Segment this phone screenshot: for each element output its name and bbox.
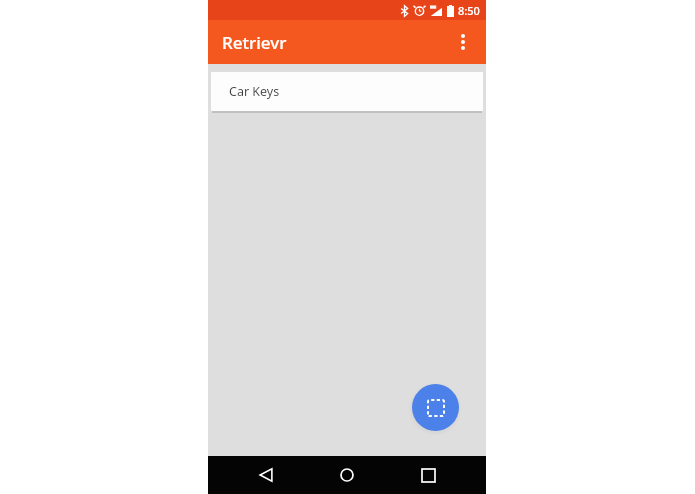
staticText: Car Keys — [229, 83, 280, 100]
button[interactable]: Car Keys — [211, 72, 483, 111]
button[interactable]: More options — [446, 25, 480, 59]
staticText: 8:50 — [458, 3, 480, 18]
button[interactable]: Recent apps — [405, 456, 451, 494]
button[interactable]: Scan item — [412, 384, 459, 431]
staticText: Retrievr — [222, 31, 287, 54]
button[interactable]: Back — [243, 456, 289, 494]
button[interactable]: Home — [324, 456, 370, 494]
